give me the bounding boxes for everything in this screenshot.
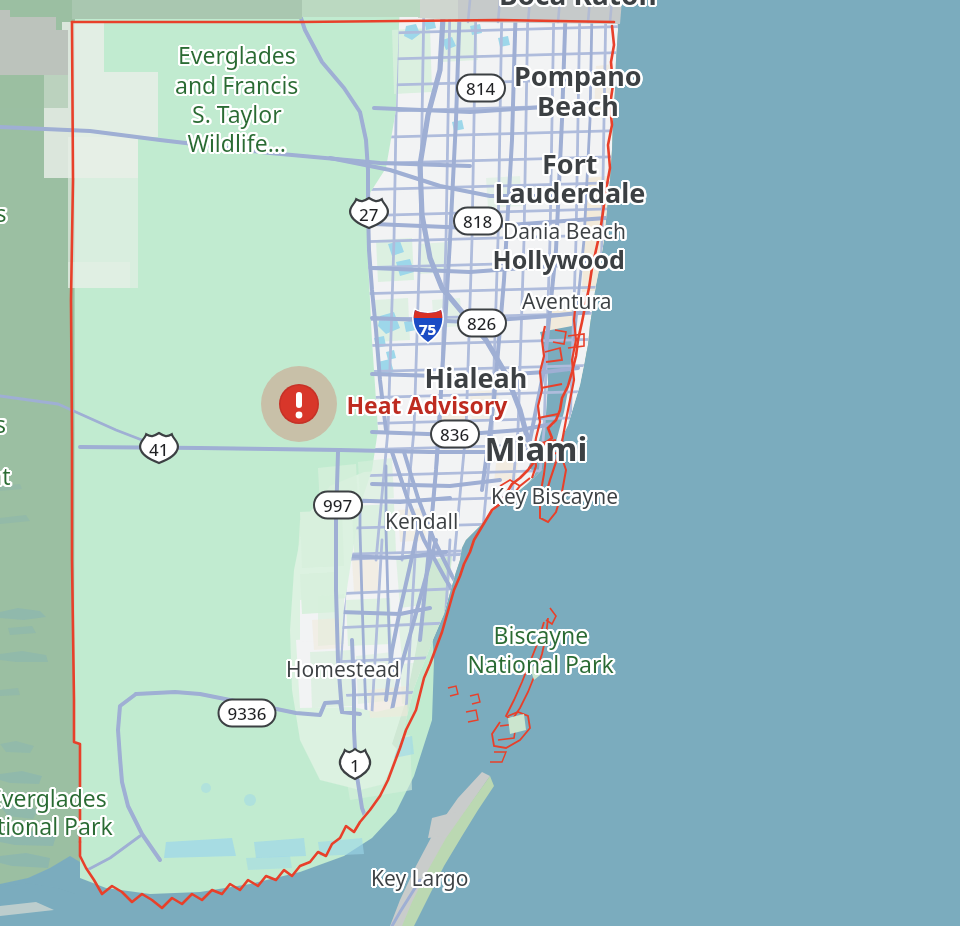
button[interactable]: Heat Advisory alert [261,366,337,442]
button[interactable]: Map of South Florida with Heat Advisory [0,0,960,926]
